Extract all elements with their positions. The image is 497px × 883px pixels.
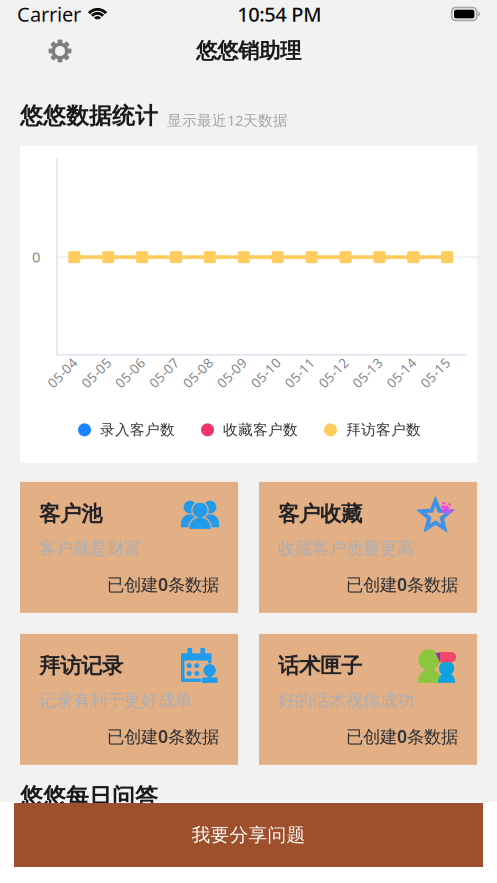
staticText: 05-06 bbox=[112, 364, 148, 381]
staticText: 05-04 bbox=[44, 364, 80, 381]
staticText: 录入客户数 bbox=[100, 421, 175, 439]
staticText: 话术匣子 bbox=[278, 653, 362, 679]
staticText: 05-11 bbox=[282, 364, 318, 381]
staticText: 显示最近12天数据 bbox=[167, 110, 288, 130]
staticText: 客户就是财富 bbox=[39, 538, 141, 559]
staticText: 05-14 bbox=[383, 364, 419, 381]
staticText: 客户收藏 bbox=[278, 501, 362, 527]
staticText: 收藏客户数 bbox=[223, 421, 298, 439]
button[interactable]: 拜访记录 bbox=[20, 634, 238, 765]
staticText: 记录有利于更好成单 bbox=[39, 690, 192, 711]
button[interactable]: 话术匣子 bbox=[259, 634, 477, 765]
staticText: 已创建0条数据 bbox=[107, 725, 219, 748]
staticText: 05-05 bbox=[78, 364, 114, 381]
staticText: 05-09 bbox=[214, 364, 250, 381]
staticText: 拜访客户数 bbox=[346, 421, 421, 439]
staticText: 已创建0条数据 bbox=[346, 725, 458, 748]
staticText: 05-08 bbox=[180, 364, 216, 381]
staticText: 0 bbox=[32, 247, 40, 267]
staticText: 05-13 bbox=[349, 364, 385, 381]
staticText: 已创建0条数据 bbox=[107, 573, 219, 596]
staticText: 05-07 bbox=[146, 364, 182, 381]
staticText: 05-10 bbox=[248, 364, 284, 381]
staticText: 好的话术祝你成功 bbox=[278, 690, 414, 711]
staticText: 10:54 PM bbox=[237, 1, 321, 27]
staticText: 已创建0条数据 bbox=[346, 573, 458, 596]
staticText: 收藏客户质量更高 bbox=[278, 538, 414, 559]
staticText: 05-12 bbox=[315, 364, 351, 381]
button[interactable]: 我要分享问题 bbox=[14, 803, 483, 867]
staticText: 我要分享问题 bbox=[191, 823, 305, 846]
staticText: 客户池 bbox=[39, 501, 102, 527]
staticText: Carrier bbox=[17, 1, 81, 27]
staticText: 拜访记录 bbox=[39, 653, 123, 679]
staticText: 悠悠数据统计 bbox=[20, 102, 158, 130]
button[interactable]: 设置 bbox=[34, 29, 86, 73]
staticText: 悠悠每日问答 bbox=[20, 783, 158, 811]
staticText: 05-15 bbox=[417, 364, 453, 381]
button[interactable]: 客户收藏 bbox=[259, 482, 477, 613]
staticText: 悠悠销助理 bbox=[196, 38, 301, 64]
button[interactable]: 客户池 bbox=[20, 482, 238, 613]
